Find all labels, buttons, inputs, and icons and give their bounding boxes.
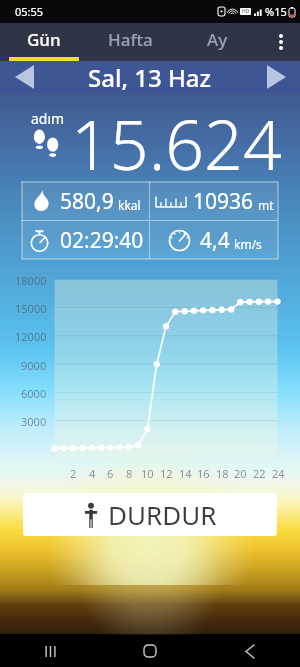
- staticText: 3000: [21, 414, 47, 429]
- staticText: mt: [258, 197, 274, 213]
- staticText: 14: [179, 466, 192, 481]
- staticText: 4: [89, 466, 96, 481]
- staticText: Sal, 13 Haz: [88, 61, 212, 93]
- staticText: 02:29:40: [60, 226, 144, 255]
- button[interactable]: Gün: [0, 23, 87, 61]
- button[interactable]: Ay: [174, 23, 261, 61]
- staticText: Ay: [207, 28, 228, 51]
- staticText: 10: [141, 466, 154, 481]
- staticText: Gün: [27, 28, 61, 51]
- staticText: 6: [107, 466, 114, 481]
- button[interactable]: Hafta: [87, 23, 174, 61]
- staticText: %15: [265, 4, 287, 19]
- button[interactable]: Home: [120, 635, 180, 667]
- button[interactable]: Back: [220, 635, 280, 667]
- staticText: 6000: [21, 386, 47, 401]
- button[interactable]: 02:29:40: [22, 221, 149, 259]
- staticText: 15000: [15, 301, 47, 316]
- staticText: 16: [197, 466, 210, 481]
- staticText: 05:55: [15, 4, 44, 19]
- staticText: DURDUR: [108, 497, 217, 532]
- button[interactable]: Next day: [252, 61, 300, 93]
- staticText: 24: [272, 466, 285, 481]
- staticText: 18: [216, 466, 229, 481]
- staticText: 22: [253, 466, 266, 481]
- staticText: 10936: [193, 187, 254, 216]
- button[interactable]: Recents: [20, 635, 80, 667]
- button[interactable]: 4,4: [150, 221, 278, 259]
- button[interactable]: 580,9: [22, 182, 149, 220]
- staticText: adım: [31, 109, 65, 128]
- staticText: km/s: [234, 236, 262, 252]
- staticText: 4,4: [200, 226, 230, 255]
- button[interactable]: 10936: [150, 182, 278, 220]
- staticText: 12000: [15, 329, 47, 344]
- staticText: 20: [234, 466, 247, 481]
- staticText: 9000: [21, 358, 47, 373]
- staticText: 8: [126, 466, 133, 481]
- staticText: 12: [160, 466, 173, 481]
- button[interactable]: DURDUR: [23, 493, 277, 536]
- button[interactable]: More options: [261, 23, 300, 61]
- staticText: 15.624: [71, 97, 282, 179]
- staticText: Hafta: [108, 28, 153, 51]
- staticText: 2: [70, 466, 77, 481]
- staticText: 18000: [15, 273, 47, 288]
- button[interactable]: Previous day: [0, 61, 48, 93]
- staticText: 580,9: [60, 187, 114, 216]
- staticText: HD: [242, 8, 250, 15]
- staticText: kkal: [118, 197, 141, 213]
